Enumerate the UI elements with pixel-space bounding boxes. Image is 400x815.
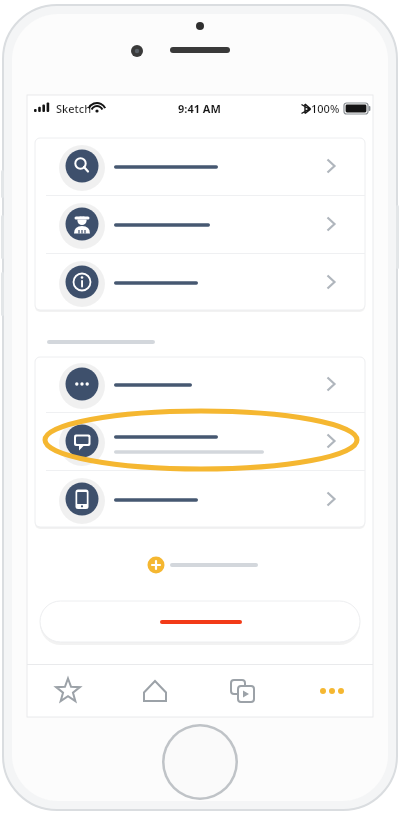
button[interactable]: Account <box>35 195 365 253</box>
button[interactable]: Add item <box>140 552 270 578</box>
button[interactable]: Messages <box>35 412 365 470</box>
button[interactable]: Device <box>35 470 365 527</box>
button[interactable]: Search <box>35 138 365 195</box>
button[interactable]: More <box>275 665 365 717</box>
staticText: Sketch <box>56 101 92 116</box>
button[interactable]: Library <box>195 665 275 717</box>
button[interactable]: Home <box>115 665 195 717</box>
button[interactable]: More options <box>35 357 365 412</box>
button[interactable]: Submit <box>40 601 360 642</box>
button[interactable]: Favorites <box>35 665 115 717</box>
staticText: 100% <box>311 101 340 116</box>
button[interactable]: Information <box>35 253 365 310</box>
staticText: 9:41 AM <box>178 101 221 116</box>
